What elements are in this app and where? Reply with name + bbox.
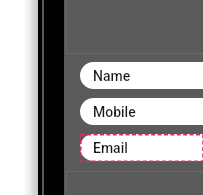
staticText: Mobile (93, 104, 136, 120)
button[interactable]: Mobile (80, 98, 203, 125)
staticText: Name (93, 68, 131, 84)
button[interactable]: Email (80, 134, 203, 161)
button[interactable]: Name (80, 62, 203, 89)
staticText: Email (93, 140, 128, 156)
